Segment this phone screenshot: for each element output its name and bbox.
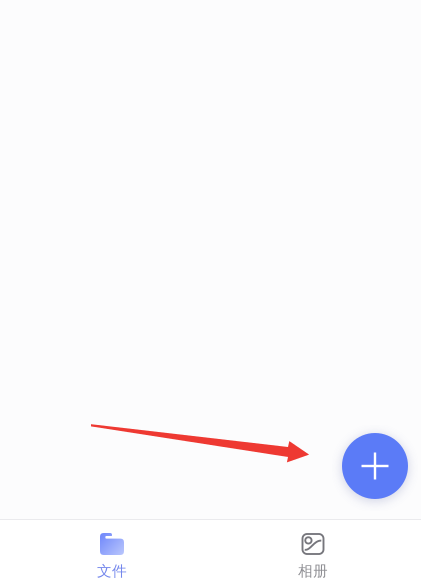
button[interactable]: Add bbox=[342, 433, 408, 499]
staticText: 相册 bbox=[298, 562, 328, 580]
button[interactable]: 文件 bbox=[77, 520, 147, 586]
button[interactable]: 相册 bbox=[278, 520, 348, 586]
staticText: 文件 bbox=[97, 562, 127, 580]
